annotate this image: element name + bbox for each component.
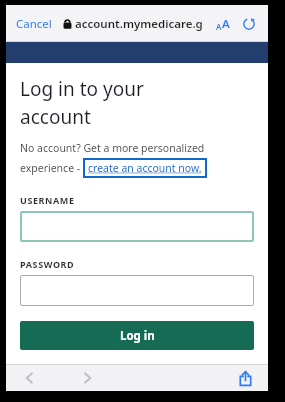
staticText: A: [222, 16, 230, 32]
staticText: account.mymedicare.g: [75, 16, 205, 32]
button[interactable]: create an account now.: [83, 158, 207, 178]
button[interactable]: Cancel: [14, 13, 54, 35]
staticText: PASSWORD: [20, 258, 75, 270]
staticText: experience -: [20, 161, 81, 175]
staticText: A: [216, 21, 222, 32]
staticText: Log in to your: [20, 76, 144, 102]
button[interactable]: Text size options: [212, 13, 234, 35]
button[interactable]: Share: [232, 365, 258, 391]
button[interactable]: Forward: [74, 365, 100, 391]
button[interactable]: Reload page: [238, 13, 260, 35]
button[interactable]: Password input field: [20, 275, 254, 306]
button[interactable]: Back: [16, 365, 42, 391]
staticText: Log in: [120, 328, 155, 344]
staticText: create an account now.: [88, 161, 202, 175]
button[interactable]: Log in: [20, 321, 254, 350]
button[interactable]: Username input field: [20, 211, 254, 242]
staticText: USERNAME: [20, 194, 75, 206]
staticText: Cancel: [16, 16, 52, 32]
staticText: No account? Get a more personalized: [20, 141, 205, 155]
staticText: account: [20, 104, 91, 130]
